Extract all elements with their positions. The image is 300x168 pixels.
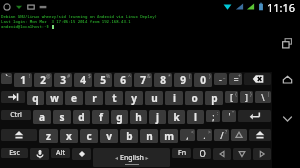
button[interactable]: 7: [134, 73, 152, 87]
staticText: Debian GNU/Linux wheezy/sid (running on …: [1, 14, 157, 19]
button[interactable]: n: [140, 129, 158, 143]
button[interactable]: Right: [253, 148, 271, 160]
button[interactable]: h: [130, 110, 147, 124]
button[interactable]: 5: [94, 73, 112, 87]
button[interactable]: r: [85, 91, 103, 105]
button[interactable]: ]: [240, 91, 253, 103]
button[interactable]: 0: [194, 73, 212, 87]
button[interactable]: Fn: [172, 148, 191, 158]
staticText: h: [135, 110, 142, 124]
staticText: android@localhost:~$: [1, 24, 52, 29]
staticText: v: [106, 129, 112, 143]
button[interactable]: Backspace: [244, 73, 271, 85]
button[interactable]: z: [39, 129, 58, 143]
button[interactable]: s: [53, 110, 71, 124]
button[interactable]: Left: [213, 148, 231, 160]
staticText: %: [106, 73, 111, 80]
button[interactable]: 8: [154, 73, 172, 87]
button[interactable]: \: [255, 91, 271, 103]
button[interactable]: Shift: [1, 129, 37, 141]
button[interactable]: `: [1, 73, 12, 84]
button[interactable]: ,: [180, 129, 195, 141]
staticText: l: [194, 110, 197, 124]
button[interactable]: p: [205, 91, 223, 105]
button[interactable]: Esc: [1, 148, 28, 158]
staticText: `: [5, 73, 8, 84]
button[interactable]: a: [33, 110, 51, 124]
button[interactable]: Hide keyboard: [280, 111, 294, 125]
button[interactable]: w: [46, 91, 63, 105]
button[interactable]: [: [225, 91, 238, 103]
button[interactable]: /: [214, 129, 229, 141]
button[interactable]: k: [168, 110, 185, 124]
button[interactable]: l: [187, 110, 204, 124]
button[interactable]: Down: [233, 148, 251, 160]
staticText: f: [99, 110, 103, 124]
staticText: g: [116, 110, 123, 124]
staticText: 11:16: [267, 0, 296, 13]
staticText: q: [32, 91, 39, 105]
button[interactable]: Alt: [51, 148, 70, 158]
button[interactable]: 9: [174, 73, 192, 87]
staticText: Alt: [56, 148, 65, 158]
button[interactable]: o: [185, 91, 203, 105]
button[interactable]: ': [222, 110, 236, 122]
staticText: 9: [180, 73, 186, 87]
staticText: 3: [60, 73, 66, 87]
button[interactable]: O: [193, 148, 211, 159]
staticText: ': [228, 110, 231, 122]
staticText: ^: [128, 73, 131, 80]
button[interactable]: 4: [74, 73, 92, 87]
staticText: Ctrl: [10, 110, 22, 120]
button[interactable]: g: [111, 110, 128, 124]
button[interactable]: Enter: [238, 110, 271, 122]
button[interactable]: u: [145, 91, 163, 105]
staticText: \: [261, 91, 265, 103]
button[interactable]: Shift: [249, 129, 271, 141]
staticText: :: [217, 110, 219, 117]
staticText: ;: [212, 110, 215, 122]
button[interactable]: Home: [280, 72, 294, 86]
button[interactable]: x: [60, 129, 78, 143]
button[interactable]: Ctrl: [1, 110, 31, 120]
button[interactable]: b: [120, 129, 138, 143]
button[interactable]: =: [229, 73, 242, 85]
button[interactable]: d: [73, 110, 90, 124]
button[interactable]: e: [65, 91, 83, 105]
button[interactable]: 2: [34, 73, 52, 87]
button[interactable]: Tab: [1, 91, 25, 103]
staticText: Esc: [9, 148, 20, 158]
staticText: b: [126, 129, 133, 143]
button[interactable]: m: [160, 129, 178, 143]
button[interactable]: Settings: [72, 148, 91, 160]
staticText: ▸: [144, 154, 149, 162]
button[interactable]: t: [105, 91, 123, 105]
button[interactable]: -: [214, 73, 227, 85]
button[interactable]: Voice input: [30, 148, 49, 160]
button[interactable]: 6: [114, 73, 132, 87]
staticText: m: [164, 129, 174, 143]
button[interactable]: 1: [14, 73, 32, 87]
button[interactable]: v: [100, 129, 118, 143]
staticText: i: [173, 91, 176, 105]
button[interactable]: Up: [231, 129, 247, 141]
button[interactable]: q: [27, 91, 44, 105]
button[interactable]: c: [80, 129, 98, 143]
staticText: Fn: [178, 148, 186, 158]
button[interactable]: f: [92, 110, 109, 124]
staticText: #: [67, 73, 71, 80]
staticText: y: [131, 91, 137, 105]
button[interactable]: ;: [206, 110, 220, 122]
button[interactable]: j: [149, 110, 166, 124]
staticText: @: [46, 73, 51, 80]
button[interactable]: 3: [54, 73, 72, 87]
button[interactable]: i: [165, 91, 183, 105]
staticText: 0: [200, 73, 206, 87]
staticText: n: [146, 129, 153, 143]
button[interactable]: y: [125, 91, 143, 105]
button[interactable]: .: [197, 129, 212, 141]
button[interactable]: Recent apps: [280, 36, 294, 50]
button[interactable]: ◂: [93, 148, 170, 167]
staticText: 7: [140, 73, 146, 87]
staticText: ◂: [115, 154, 120, 162]
